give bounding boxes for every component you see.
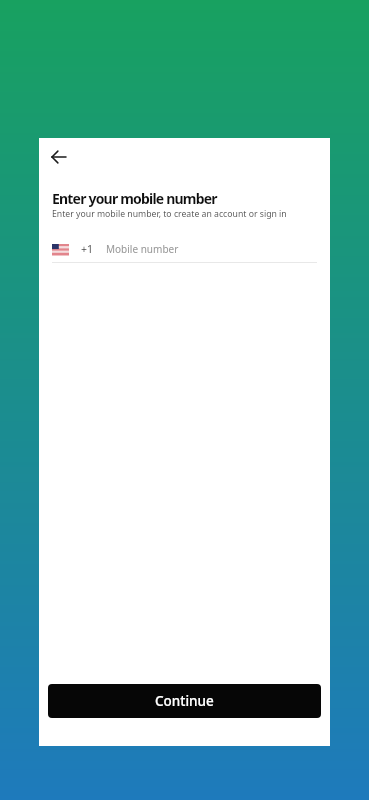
button[interactable]: Continue	[48, 684, 321, 718]
staticText: Enter your mobile number	[52, 189, 217, 208]
staticText: Enter your mobile number, to create an a…	[52, 208, 287, 220]
staticText: Mobile number	[106, 242, 179, 256]
staticText: Continue	[155, 692, 214, 710]
button[interactable]	[52, 150, 66, 164]
staticText: +1	[81, 242, 94, 256]
button[interactable]: +1	[52, 242, 317, 256]
